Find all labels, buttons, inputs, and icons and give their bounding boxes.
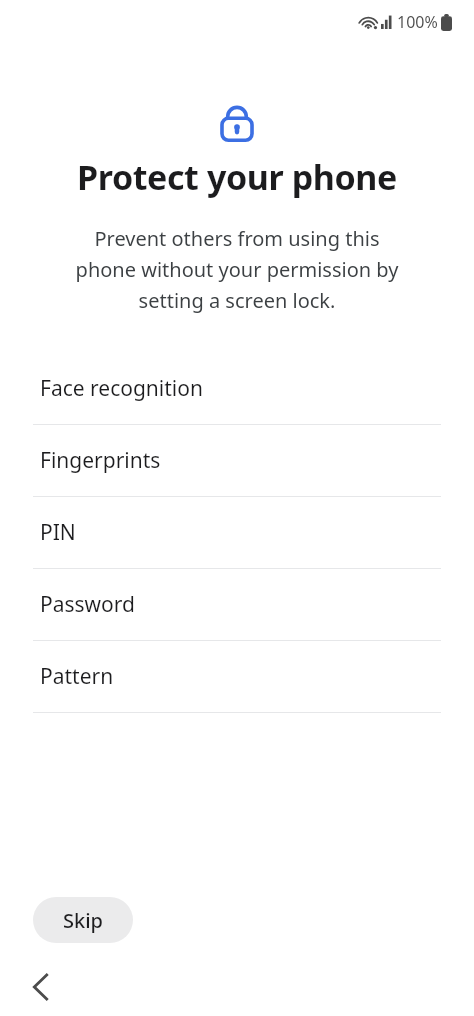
button[interactable]: Back [19,965,63,1009]
button[interactable]: Password [0,569,474,640]
staticText: Protect your phone [77,154,397,200]
button[interactable]: Face recognition [0,353,474,424]
staticText: Fingerprints [40,446,161,475]
staticText: Skip [63,907,103,934]
staticText: Password [40,590,135,619]
staticText: Pattern [40,662,114,691]
staticText: PIN [40,518,76,547]
staticText: Prevent others from using this phone wit… [66,225,408,314]
staticText: Face recognition [40,374,203,403]
button[interactable]: Skip [33,897,133,943]
button[interactable]: Pattern [0,641,474,712]
button[interactable]: PIN [0,497,474,568]
button[interactable]: Fingerprints [0,425,474,496]
staticText: 100% [397,11,438,33]
